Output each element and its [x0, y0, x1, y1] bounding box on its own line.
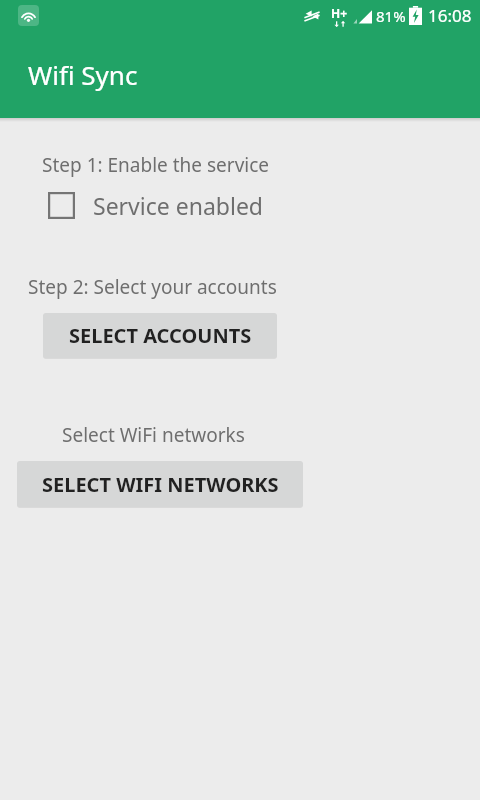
staticText: Wifi Sync [28, 57, 138, 92]
staticText: SELECT WIFI NETWORKS [42, 471, 279, 498]
staticText: 16:08 [428, 4, 472, 27]
staticText: Step 2: Select your accounts [28, 274, 277, 300]
button[interactable]: SELECT ACCOUNTS [43, 313, 277, 358]
button[interactable]: Service enabled [44, 186, 267, 225]
staticText: Service enabled [93, 190, 263, 221]
button[interactable]: SELECT WIFI NETWORKS [17, 461, 303, 507]
staticText: Step 1: Enable the service [42, 152, 270, 178]
staticText: SELECT ACCOUNTS [69, 322, 252, 349]
staticText: H+ [331, 5, 348, 21]
staticText: 81% [376, 6, 406, 26]
staticText: Select WiFi networks [62, 422, 245, 448]
